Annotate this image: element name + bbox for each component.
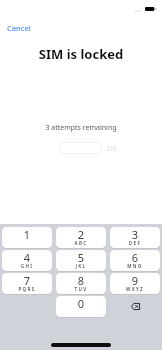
button[interactable]: Cancel (7, 23, 31, 33)
staticText: PQRS (2, 286, 52, 292)
button[interactable]: 6 (110, 250, 160, 271)
staticText: WXYZ (110, 286, 160, 292)
staticText: 1 (2, 227, 52, 242)
button[interactable]: 2 (56, 227, 106, 248)
button[interactable]: 0 (56, 296, 106, 317)
staticText: 3 attempts remaining (0, 123, 162, 133)
button[interactable]: 9 (110, 273, 160, 294)
button[interactable]: 5 (56, 250, 106, 271)
button[interactable]: 1 (2, 227, 52, 248)
staticText: 7 (2, 273, 52, 288)
staticText: 3 (110, 227, 160, 242)
staticText: DEF (110, 240, 160, 246)
button[interactable]: 7 (2, 273, 52, 294)
staticText: 2 (56, 227, 106, 242)
button[interactable]: 8 (56, 273, 106, 294)
staticText: Cancel (7, 23, 31, 33)
staticText: JKL (56, 263, 106, 269)
staticText: TUV (56, 286, 106, 292)
staticText: 4 (2, 250, 52, 265)
staticText: ABC (56, 240, 106, 246)
staticText: MNO (110, 263, 160, 269)
staticText: OK (107, 143, 118, 153)
staticText: 9 (110, 273, 160, 288)
button[interactable]: OK (107, 142, 118, 154)
staticText: 5 (56, 250, 106, 265)
button[interactable]: 4 (2, 250, 52, 271)
staticText: GHI (2, 263, 52, 269)
button[interactable]: Delete (110, 296, 160, 317)
staticText: SIM is locked (0, 45, 162, 63)
button[interactable] (59, 142, 102, 154)
staticText: 6 (110, 250, 160, 265)
staticText: 0 (56, 296, 106, 311)
button[interactable]: 3 (110, 227, 160, 248)
staticText: 8 (56, 273, 106, 288)
